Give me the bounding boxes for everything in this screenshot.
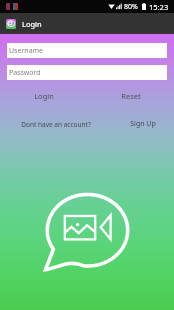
staticText: Username [9, 46, 44, 56]
staticText: Dont have an account? [21, 120, 91, 129]
button[interactable]: Login [0, 88, 87, 104]
button[interactable]: Reset [87, 88, 174, 104]
staticText: Login [22, 19, 42, 29]
staticText: 80% [124, 2, 138, 12]
staticText: Password [9, 68, 41, 78]
button[interactable]: Dont have an account? [0, 118, 112, 130]
button[interactable]: Password [7, 65, 167, 80]
staticText: Sign Up [130, 119, 156, 129]
staticText: 15:23 [149, 2, 169, 12]
button[interactable]: Username [7, 43, 167, 58]
button[interactable]: Sign Up [112, 118, 174, 130]
staticText: Login [34, 91, 54, 101]
staticText: Reset [121, 91, 141, 101]
